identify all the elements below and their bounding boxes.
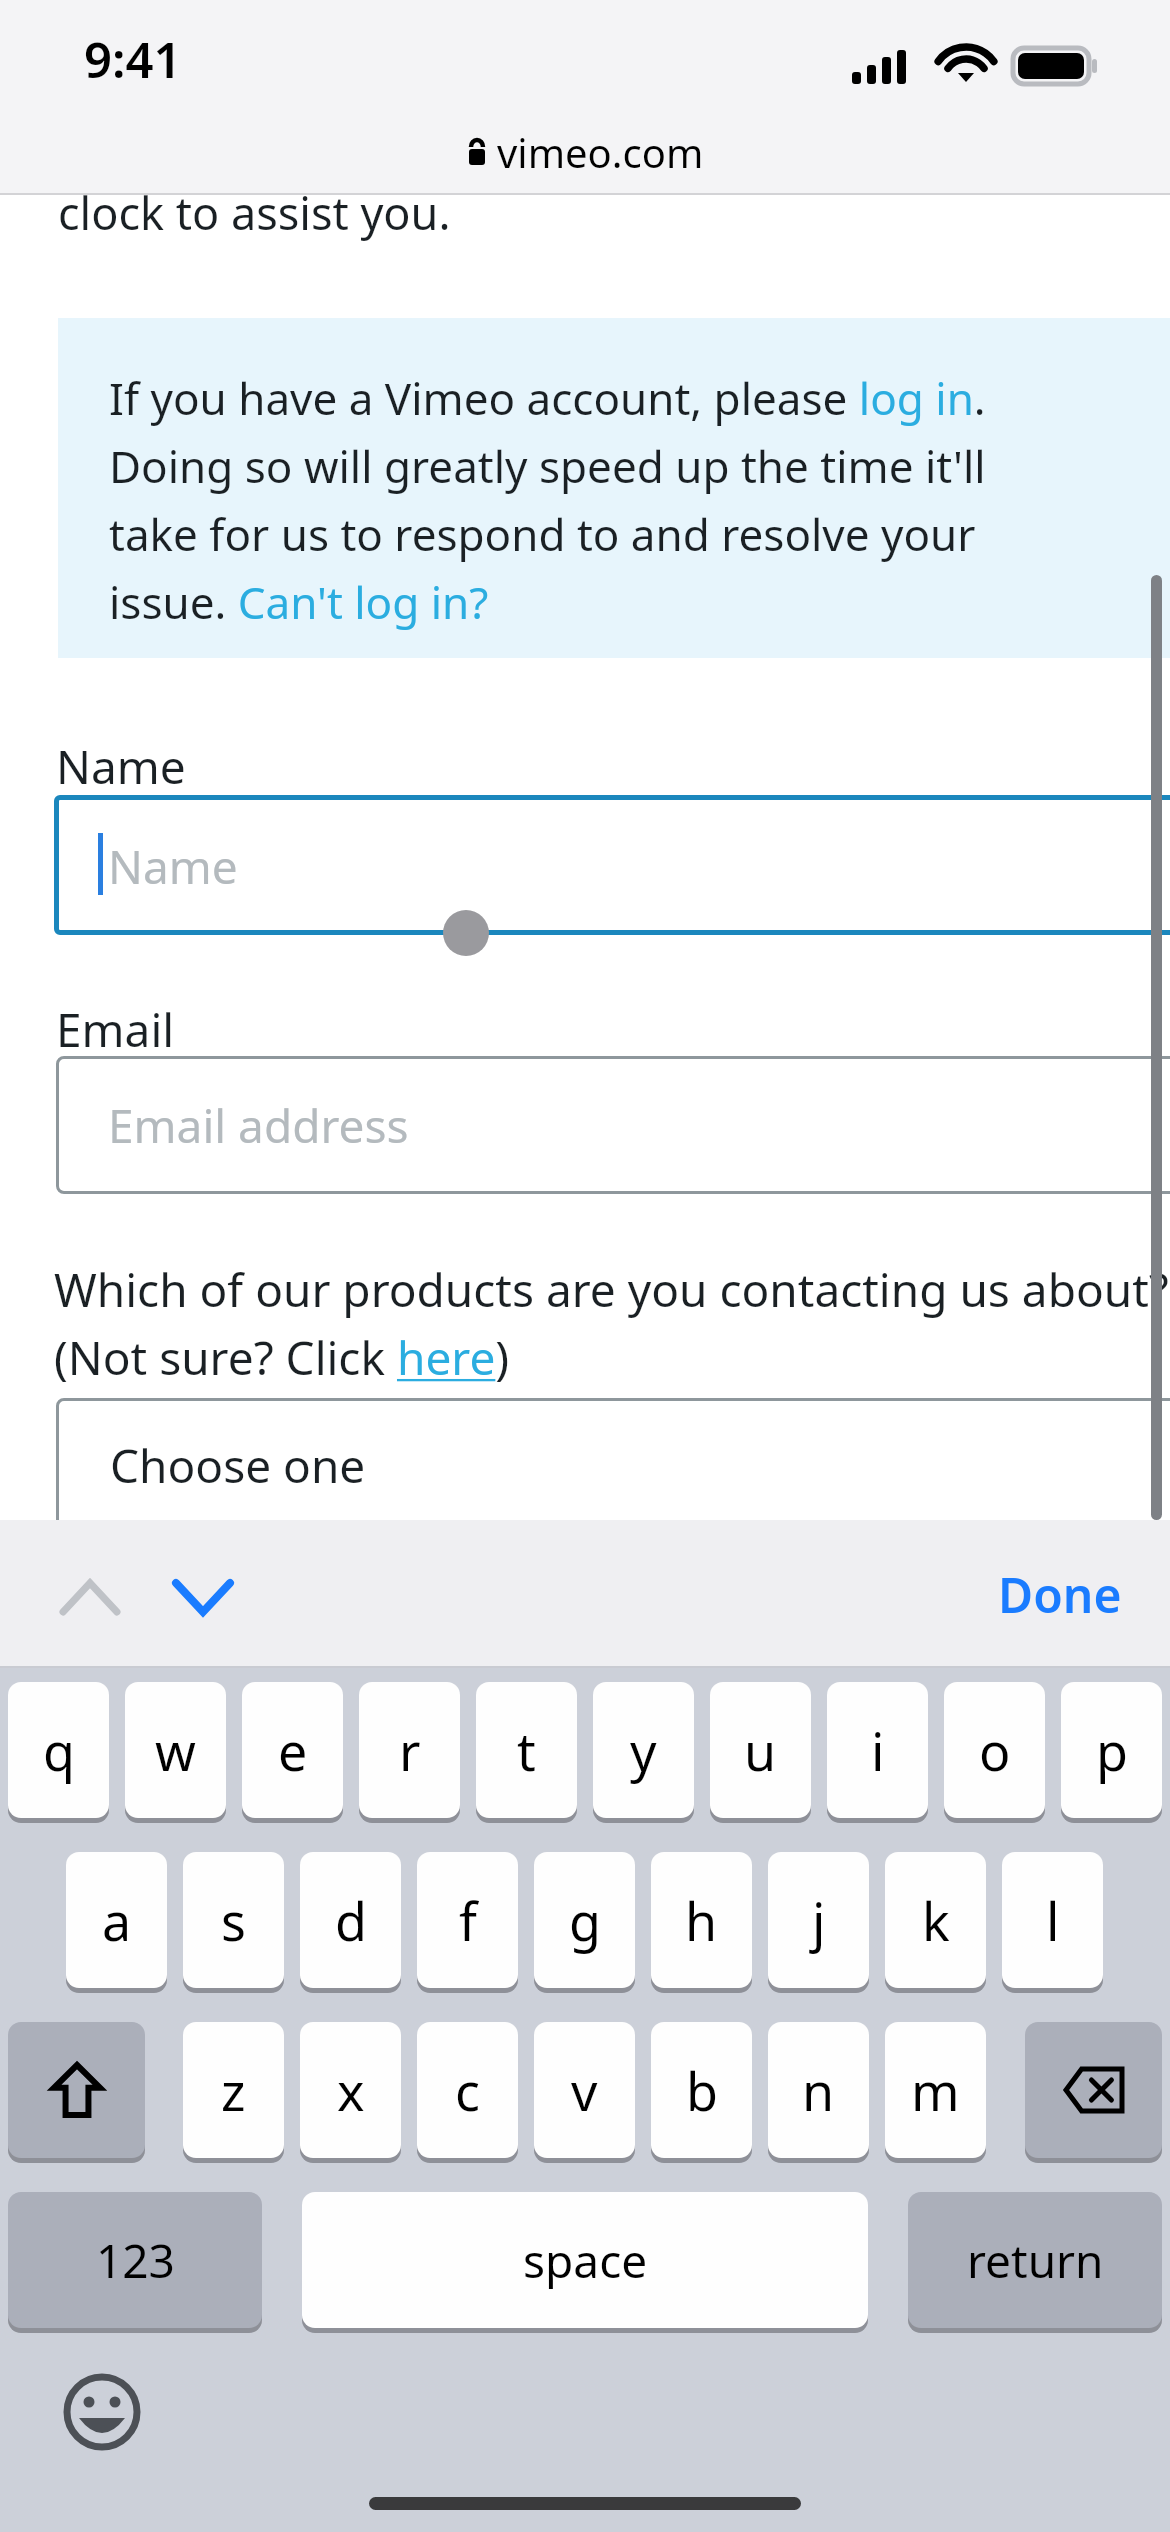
- button[interactable]: If you have a Vimeo account, please log …: [58, 318, 1170, 658]
- button[interactable]: j: [768, 1852, 869, 1988]
- staticText: Done: [998, 1562, 1122, 1627]
- staticText: x: [337, 2055, 365, 2126]
- button[interactable]: z: [183, 2022, 284, 2158]
- staticText: u: [744, 1715, 777, 1786]
- staticText: p: [1096, 1715, 1128, 1786]
- staticText: f: [459, 1885, 477, 1956]
- staticText: 9:41: [84, 26, 182, 93]
- staticText: i: [871, 1715, 885, 1786]
- button[interactable]: r: [359, 1682, 460, 1818]
- staticText: Choose one: [110, 1434, 366, 1497]
- staticText: Email address: [108, 1094, 409, 1157]
- button[interactable]: Email address: [56, 1056, 1170, 1194]
- staticText: v: [571, 2055, 598, 2126]
- button[interactable]: x: [300, 2022, 401, 2158]
- button[interactable]: v: [534, 2022, 635, 2158]
- button[interactable]: Backspace: [1025, 2022, 1162, 2158]
- button[interactable]: c: [417, 2022, 518, 2158]
- button[interactable]: (Not sure? Click here): [54, 1326, 510, 1389]
- staticText: s: [221, 1885, 246, 1956]
- button[interactable]: w: [125, 1682, 226, 1818]
- staticText: Which of our products are you contacting…: [54, 1258, 1169, 1321]
- staticText: z: [221, 2055, 246, 2126]
- staticText: d: [335, 1885, 367, 1956]
- staticText: b: [686, 2055, 718, 2126]
- button[interactable]: k: [885, 1852, 986, 1988]
- staticText: k: [922, 1885, 950, 1956]
- staticText: e: [278, 1715, 308, 1786]
- staticText: t: [517, 1715, 536, 1786]
- button[interactable]: d: [300, 1852, 401, 1988]
- button[interactable]: space: [302, 2192, 868, 2328]
- button[interactable]: h: [651, 1852, 752, 1988]
- staticText: a: [102, 1885, 132, 1956]
- staticText: q: [43, 1715, 75, 1786]
- button[interactable]: l: [1002, 1852, 1103, 1988]
- staticText: y: [630, 1715, 657, 1786]
- staticText: Name: [108, 835, 238, 898]
- staticText: Email: [56, 998, 175, 1061]
- button[interactable]: Shift: [8, 2022, 145, 2158]
- button[interactable]: Name: [54, 795, 1170, 935]
- staticText: c: [455, 2055, 480, 2126]
- button[interactable]: Next field: [158, 1552, 248, 1642]
- button[interactable]: q: [8, 1682, 109, 1818]
- staticText: n: [802, 2055, 835, 2126]
- staticText: Name: [56, 735, 186, 798]
- staticText: w: [155, 1715, 196, 1786]
- button[interactable]: f: [417, 1852, 518, 1988]
- button[interactable]: o: [944, 1682, 1045, 1818]
- staticText: h: [685, 1885, 718, 1956]
- button[interactable]: u: [710, 1682, 811, 1818]
- staticText: g: [569, 1885, 601, 1956]
- button[interactable]: e: [242, 1682, 343, 1818]
- button[interactable]: a: [66, 1852, 167, 1988]
- staticText: m: [911, 2055, 960, 2126]
- staticText: vimeo.com: [497, 125, 704, 179]
- button[interactable]: y: [593, 1682, 694, 1818]
- button[interactable]: b: [651, 2022, 752, 2158]
- button[interactable]: m: [885, 2022, 986, 2158]
- staticText: j: [812, 1885, 826, 1956]
- staticText: space: [523, 2229, 648, 2292]
- button[interactable]: s: [183, 1852, 284, 1988]
- button[interactable]: p: [1061, 1682, 1162, 1818]
- button[interactable]: Return: [908, 2192, 1162, 2328]
- staticText: 123: [96, 2229, 175, 2292]
- button[interactable]: Previous field: [45, 1552, 135, 1642]
- staticText: l: [1046, 1885, 1060, 1956]
- button[interactable]: Choose one: [56, 1398, 1170, 1530]
- button[interactable]: Numbers: [8, 2192, 262, 2328]
- button[interactable]: g: [534, 1852, 635, 1988]
- staticText: clock to assist you.: [58, 182, 451, 243]
- staticText: If you have a Vimeo account, please log …: [109, 368, 986, 632]
- button[interactable]: Emoji keyboard: [48, 2358, 156, 2466]
- button[interactable]: Done: [990, 1544, 1130, 1644]
- button[interactable]: n: [768, 2022, 869, 2158]
- button[interactable]: i: [827, 1682, 928, 1818]
- button[interactable]: t: [476, 1682, 577, 1818]
- staticText: o: [979, 1715, 1011, 1786]
- staticText: r: [399, 1715, 421, 1786]
- staticText: return: [967, 2229, 1104, 2292]
